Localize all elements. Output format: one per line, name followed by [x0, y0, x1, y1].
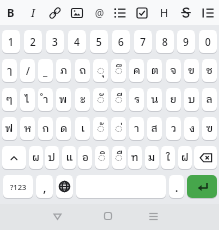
button[interactable]: ม [145, 146, 159, 169]
button[interactable]: ◌ิ [95, 146, 109, 169]
staticText: า [134, 120, 140, 137]
button[interactable]: ◌ุ [93, 59, 108, 82]
button[interactable]: 0 [199, 30, 217, 53]
button[interactable]: ห [20, 117, 35, 140]
button[interactable]: ไ [20, 88, 35, 111]
staticText: เ [81, 120, 85, 137]
button[interactable] [48, 207, 66, 225]
button[interactable]: 1 [2, 30, 20, 53]
button[interactable]: ภ [56, 59, 71, 82]
button[interactable]: ค [129, 59, 144, 82]
staticText: แ [66, 149, 73, 166]
button[interactable]: ?123 [3, 175, 33, 198]
button[interactable]: เ [75, 117, 90, 140]
button[interactable]: ะ [75, 88, 90, 111]
button[interactable]: แ [62, 146, 76, 169]
button[interactable]: ฟ [2, 117, 17, 140]
staticText: 0 [205, 35, 211, 49]
staticText: ด [60, 120, 68, 137]
button[interactable] [194, 146, 217, 169]
button[interactable]: ล [202, 88, 217, 111]
staticText: น [151, 91, 159, 108]
button[interactable] [176, 0, 196, 25]
button[interactable]: 9 [177, 30, 195, 53]
button[interactable]: 4 [68, 30, 86, 53]
button[interactable] [144, 207, 162, 225]
staticText: ท [131, 149, 139, 166]
button[interactable]: จ [166, 59, 181, 82]
staticText: 6 [118, 35, 124, 49]
button[interactable]: 3 [46, 30, 64, 53]
button[interactable]: ๆ [2, 88, 17, 111]
staticText: 5 [96, 35, 102, 49]
button[interactable] [2, 146, 26, 169]
button[interactable]: อ [78, 146, 92, 169]
staticText: ป [48, 149, 56, 166]
button[interactable]: น [147, 88, 162, 111]
button[interactable]: 7 [134, 30, 152, 53]
button[interactable]: ◌้ [93, 117, 108, 140]
button[interactable] [198, 0, 218, 25]
button[interactable] [110, 0, 130, 25]
button[interactable]: ว [166, 117, 181, 140]
button[interactable]: ◌ื [112, 146, 126, 169]
staticText: ใ [166, 149, 171, 166]
button[interactable]: ท [128, 146, 142, 169]
staticText: ฃ [206, 120, 214, 137]
staticText: ข [188, 62, 195, 79]
button[interactable]: ◌ี [111, 88, 126, 111]
button[interactable]: B [1, 0, 21, 25]
button[interactable]: 6 [112, 30, 130, 53]
staticText: ◌ึ [115, 62, 123, 79]
button[interactable]: I [23, 0, 43, 25]
button[interactable]: H [154, 0, 174, 25]
button[interactable]: ๅ [2, 59, 17, 82]
button[interactable] [187, 175, 217, 198]
button[interactable]: ◌่ [111, 117, 126, 140]
button[interactable]: ข [184, 59, 199, 82]
staticText: ◌ั [97, 91, 105, 108]
button[interactable]: ฃ [202, 117, 217, 140]
button[interactable]: . [169, 175, 184, 198]
button[interactable] [45, 0, 65, 25]
button[interactable]: / [20, 59, 35, 82]
staticText: ร [134, 91, 140, 108]
staticText: H [160, 5, 169, 20]
button[interactable]: , [36, 175, 53, 198]
button[interactable]: 2 [24, 30, 42, 53]
button[interactable]: ง [184, 117, 199, 140]
button[interactable] [56, 175, 73, 198]
button[interactable]: ◌ั [93, 88, 108, 111]
button[interactable]: ส [147, 117, 162, 140]
button[interactable]: 5 [90, 30, 108, 53]
button[interactable]: ผ [29, 146, 43, 169]
button[interactable]: ด [56, 117, 71, 140]
button[interactable] [67, 0, 87, 25]
staticText: ◌ุ [97, 62, 105, 79]
button[interactable]: บ [184, 88, 199, 111]
staticText: ผ [32, 149, 40, 166]
button[interactable]: า [129, 117, 144, 140]
button[interactable]: @ [89, 0, 109, 25]
button[interactable]: ต [147, 59, 162, 82]
button[interactable]: ย [166, 88, 181, 111]
button[interactable]: ก [38, 117, 53, 140]
button[interactable]: พ [56, 88, 71, 111]
button[interactable]: ำ [38, 88, 53, 111]
button[interactable]: 8 [156, 30, 174, 53]
staticText: 2 [30, 35, 36, 49]
button[interactable] [99, 207, 117, 225]
staticText: ◌ิ [98, 149, 106, 166]
button[interactable]: ร [129, 88, 144, 111]
button[interactable]: _ [38, 59, 53, 82]
button[interactable]: ฝ [178, 146, 192, 169]
button[interactable]: ใ [161, 146, 175, 169]
staticText: อ [82, 149, 89, 166]
button[interactable]: ช [202, 59, 217, 82]
staticText: 8 [162, 35, 168, 49]
button[interactable]: ◌ึ [111, 59, 126, 82]
button[interactable]: ถ [75, 59, 90, 82]
button[interactable] [132, 0, 152, 25]
button[interactable]: ป [45, 146, 59, 169]
